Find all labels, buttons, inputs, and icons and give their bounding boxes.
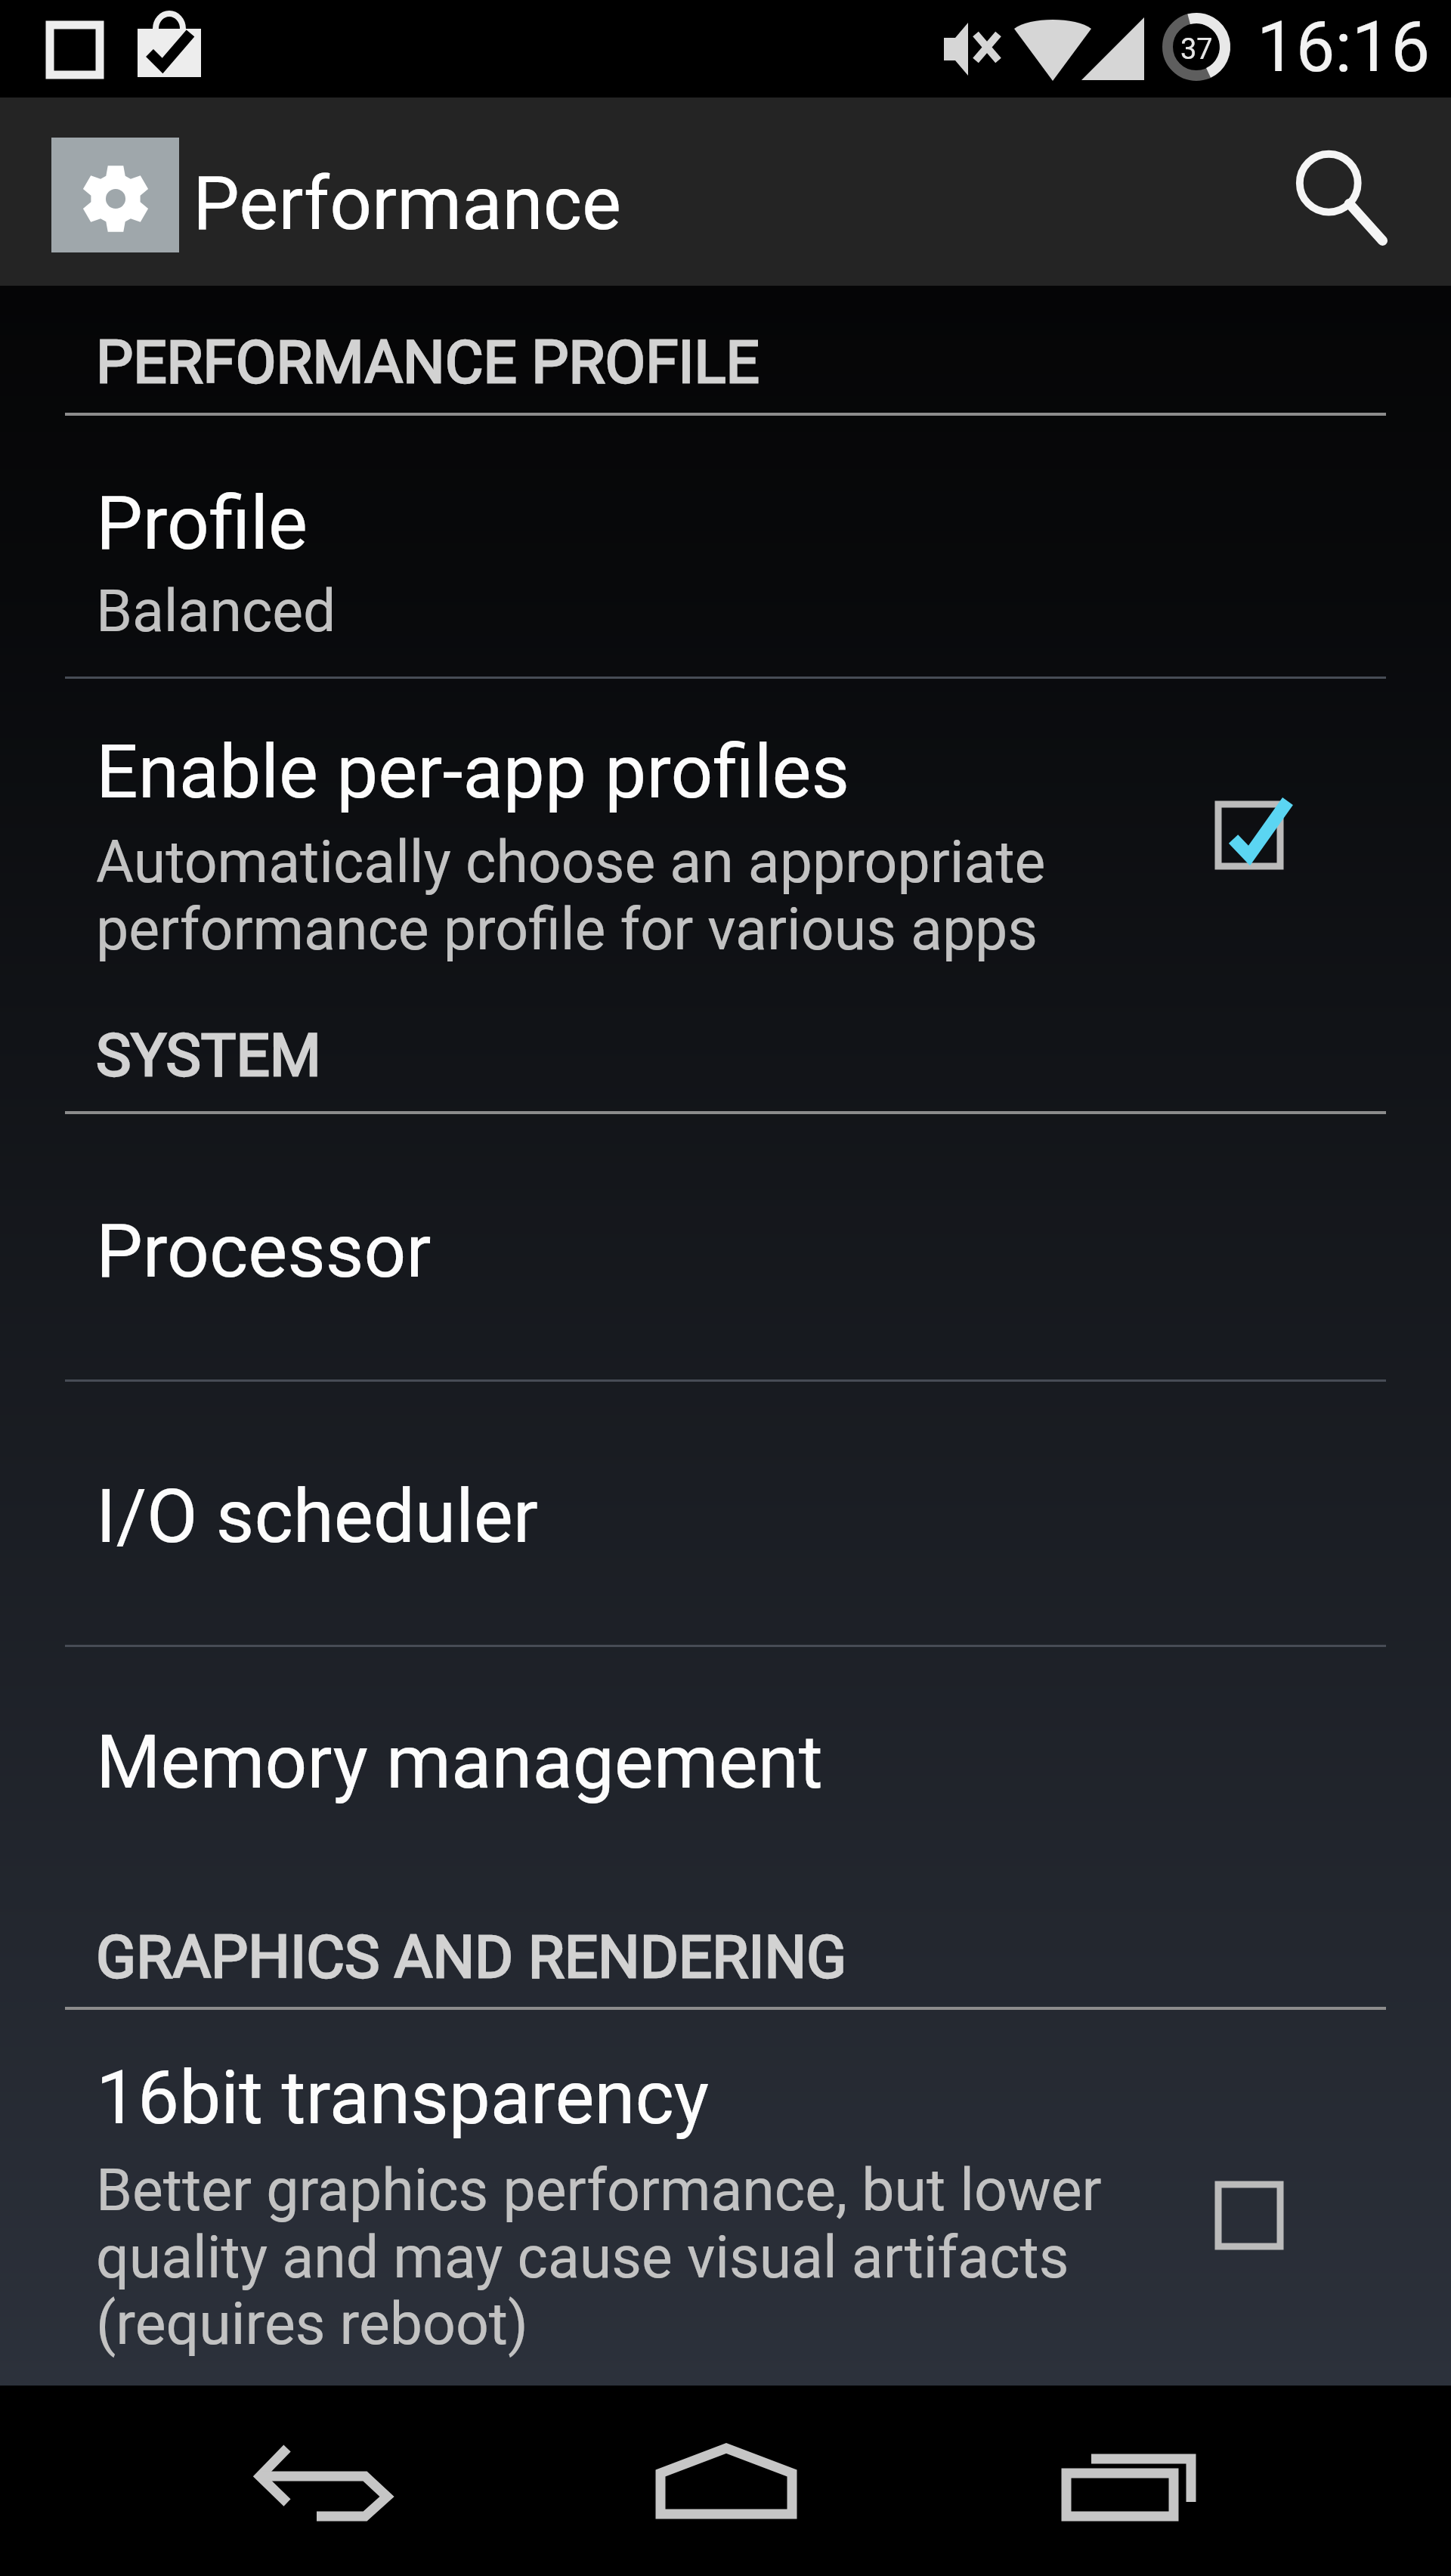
staticText: Memory management bbox=[96, 1719, 823, 1806]
button[interactable]: Back bbox=[166, 2386, 484, 2576]
button[interactable]: 16bit transparency bbox=[0, 2010, 1451, 2373]
staticText: GRAPHICS AND RENDERING bbox=[96, 1923, 847, 1992]
staticText: SYSTEM bbox=[96, 1021, 321, 1090]
button[interactable]: Processor bbox=[0, 1114, 1451, 1379]
staticText: Enable per-app profiles bbox=[96, 729, 850, 816]
button[interactable]: Profile bbox=[0, 416, 1451, 677]
staticText: 37 bbox=[1180, 33, 1213, 67]
button[interactable]: Memory management bbox=[0, 1647, 1451, 1923]
staticText: Processor bbox=[96, 1208, 432, 1295]
staticText: 16bit transparency bbox=[96, 2054, 710, 2141]
button[interactable]: I/O scheduler bbox=[0, 1382, 1451, 1645]
button[interactable]: Enable per-app profiles bbox=[0, 679, 1451, 1021]
staticText: Automatically choose an appropriate perf… bbox=[96, 828, 1046, 963]
button[interactable]: Search bbox=[1262, 98, 1451, 286]
staticText: I/O scheduler bbox=[96, 1473, 538, 1560]
button[interactable]: Recent apps bbox=[975, 2386, 1277, 2576]
staticText: Profile bbox=[96, 480, 308, 567]
button[interactable]: Home bbox=[574, 2386, 877, 2576]
staticText: Balanced bbox=[96, 577, 336, 646]
staticText: PERFORMANCE PROFILE bbox=[96, 328, 760, 397]
staticText: 16:16 bbox=[1257, 7, 1431, 88]
staticText: Performance bbox=[193, 160, 621, 247]
staticText: Better graphics performance, but lower q… bbox=[96, 2156, 1102, 2358]
